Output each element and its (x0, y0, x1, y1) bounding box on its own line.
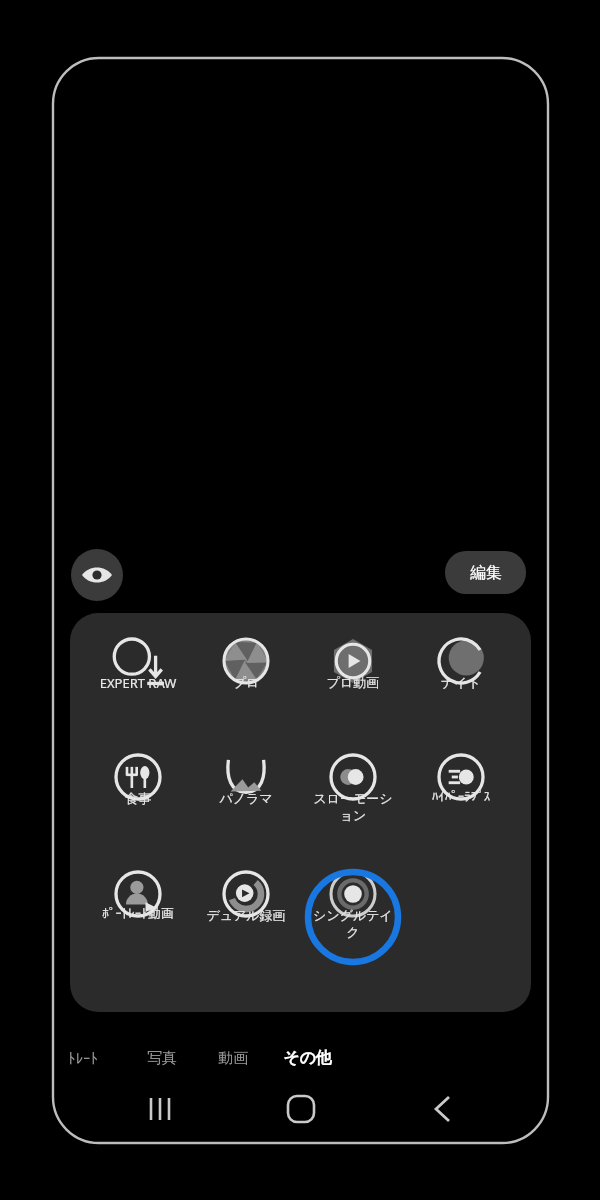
staticText: スローモーション (310, 790, 396, 824)
button[interactable]: ナイト (409, 627, 513, 719)
staticText: 食事 (86, 790, 190, 806)
staticText: シングルテイク (310, 907, 396, 941)
button[interactable]: Home (261, 1085, 341, 1133)
button[interactable]: 編集 (445, 551, 526, 594)
staticText: 写真 (147, 1049, 177, 1068)
button[interactable]: ﾊｲﾊﾟｰﾗﾌﾟｽ (409, 743, 513, 835)
button[interactable]: 食事 (86, 743, 190, 835)
button[interactable]: その他 (267, 1040, 347, 1076)
button[interactable]: プロ (194, 627, 298, 719)
button[interactable]: プロ動画 (301, 627, 405, 719)
staticText: EXPERT RAW (86, 674, 190, 692)
button[interactable]: Back (402, 1085, 482, 1133)
button[interactable]: シングルテイク (301, 860, 405, 952)
button[interactable]: 動画 (193, 1040, 273, 1076)
staticText: その他 (283, 1048, 332, 1068)
button[interactable]: EXPERT RAW (86, 627, 190, 719)
staticText: ﾊｲﾊﾟｰﾗﾌﾟｽ (409, 790, 513, 803)
staticText: デュアル録画 (194, 907, 298, 923)
staticText: 動画 (218, 1049, 248, 1068)
staticText: プロ (194, 674, 298, 690)
button[interactable]: 写真 (122, 1040, 202, 1076)
button[interactable]: スローモーション (301, 743, 405, 835)
button[interactable]: Recents (120, 1085, 200, 1133)
staticText: ナイト (409, 674, 513, 690)
staticText: パノラマ (194, 790, 298, 806)
button[interactable]: デュアル録画 (194, 860, 298, 952)
button[interactable]: ﾎﾟｰﾄﾚｰﾄ動画 (86, 860, 190, 952)
staticText: ﾎﾟｰﾄﾚｰﾄ動画 (86, 907, 190, 920)
button[interactable]: ﾄﾚｰﾄ (43, 1040, 123, 1076)
staticText: ﾄﾚｰﾄ (68, 1051, 98, 1066)
staticText: 編集 (470, 563, 502, 583)
staticText: プロ動画 (301, 674, 405, 690)
button[interactable]: Preview (71, 549, 123, 601)
button[interactable]: パノラマ (194, 743, 298, 835)
